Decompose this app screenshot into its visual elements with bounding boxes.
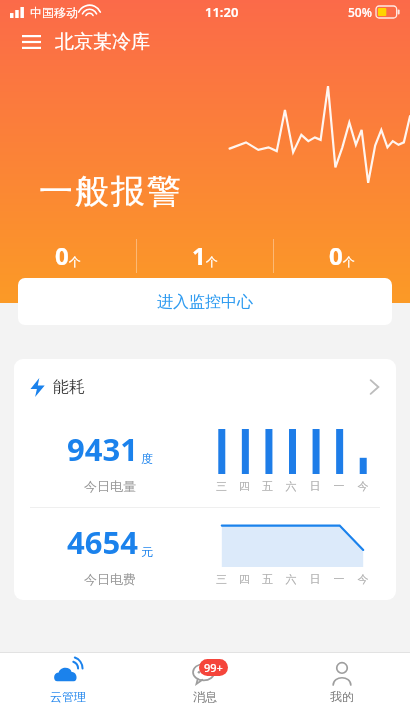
- staticText: 今日电量: [84, 478, 136, 494]
- button[interactable]: 进入监控中心: [18, 278, 392, 325]
- staticText: 0: [55, 239, 69, 272]
- staticText: 个: [69, 254, 81, 269]
- staticText: 日: [303, 572, 327, 586]
- staticText: 进入监控中心: [157, 292, 253, 312]
- staticText: 中国移动: [30, 5, 78, 20]
- button[interactable]: 能耗: [30, 359, 380, 415]
- staticText: 北京某冷库: [55, 30, 150, 54]
- staticText: 我的: [330, 689, 354, 704]
- staticText: 能耗: [53, 377, 85, 397]
- staticText: 一般报警: [38, 170, 182, 213]
- button[interactable]: 0: [274, 239, 410, 294]
- staticText: 六: [279, 479, 303, 493]
- staticText: 六: [279, 572, 303, 586]
- staticText: 50%: [348, 4, 372, 20]
- staticText: 元: [141, 544, 153, 559]
- staticText: 一: [327, 572, 351, 586]
- staticText: 三: [210, 479, 233, 493]
- staticText: 云管理: [50, 689, 86, 704]
- staticText: 日: [303, 479, 327, 493]
- button[interactable]: Menu: [16, 27, 46, 57]
- staticText: 9431: [67, 428, 138, 470]
- staticText: 今: [351, 572, 375, 586]
- staticText: 0: [329, 239, 343, 272]
- staticText: 消息: [193, 689, 217, 704]
- button[interactable]: 99+: [136, 653, 273, 710]
- staticText: 三: [210, 572, 233, 586]
- staticText: 今: [351, 479, 375, 493]
- staticText: 今日电费: [84, 571, 136, 587]
- staticText: 1: [192, 239, 206, 272]
- staticText: 个: [206, 254, 218, 269]
- staticText: 四: [233, 572, 256, 586]
- staticText: 五: [256, 479, 279, 493]
- staticText: 五: [256, 572, 279, 586]
- staticText: 一: [327, 479, 351, 493]
- button[interactable]: 我的: [273, 653, 410, 710]
- staticText: 度: [141, 451, 153, 466]
- button[interactable]: 0: [0, 239, 136, 294]
- staticText: 四: [233, 479, 256, 493]
- staticText: 个: [343, 254, 355, 269]
- staticText: 4654: [67, 521, 138, 563]
- staticText: 99+: [204, 660, 223, 675]
- staticText: 11:20: [205, 3, 239, 21]
- button[interactable]: 云管理: [0, 653, 136, 710]
- button[interactable]: 1: [137, 239, 273, 294]
